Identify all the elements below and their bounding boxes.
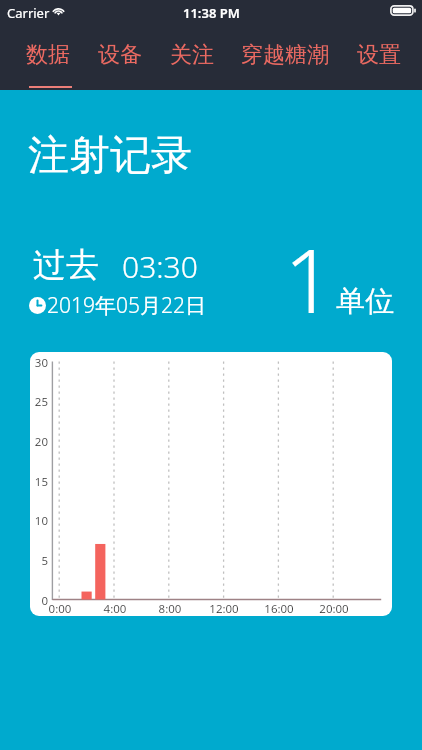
staticText: 数据	[26, 41, 70, 69]
button[interactable]: 设备	[98, 33, 142, 77]
staticText: 关注	[170, 41, 214, 69]
staticText: 5	[31, 553, 48, 569]
staticText: 注射记录	[28, 130, 192, 182]
staticText: 过去	[33, 244, 99, 286]
staticText: 15	[31, 474, 48, 490]
staticText: Carrier	[7, 4, 50, 22]
button[interactable]: 数据	[26, 33, 70, 77]
staticText: 4:00	[90, 601, 140, 616]
staticText: 8:00	[145, 601, 195, 616]
button[interactable]: 穿越糖潮	[241, 33, 329, 77]
staticText: 设备	[98, 41, 142, 69]
staticText: 10	[31, 513, 48, 529]
staticText: 16:00	[254, 601, 304, 616]
staticText: 12:00	[199, 601, 249, 616]
staticText: 2019年05月22日	[47, 291, 206, 320]
staticText: 0:00	[35, 601, 85, 616]
staticText: 20:00	[309, 601, 359, 616]
staticText: 25	[31, 394, 48, 410]
staticText: 30	[31, 355, 48, 371]
staticText: 设置	[357, 41, 401, 69]
staticText: 0	[31, 593, 48, 609]
staticText: 20	[31, 434, 48, 450]
button[interactable]: 设置	[357, 33, 401, 77]
staticText: 穿越糖潮	[241, 41, 329, 69]
staticText: 单位	[336, 283, 394, 320]
staticText: 03:30	[122, 246, 198, 287]
button[interactable]: 关注	[170, 33, 214, 77]
staticText: 1	[284, 219, 335, 339]
staticText: 11:38 PM	[183, 4, 240, 22]
